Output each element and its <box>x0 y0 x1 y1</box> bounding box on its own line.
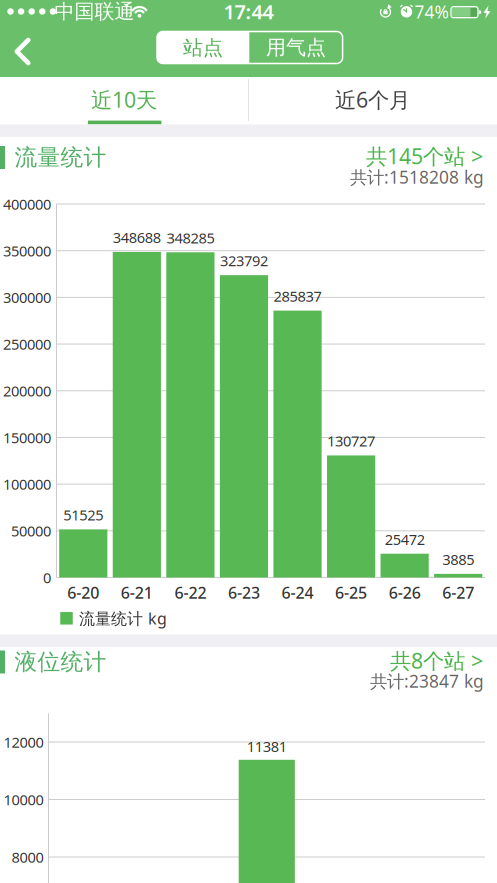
staticText: 用气点 <box>266 35 326 60</box>
staticText: 25472 <box>385 529 425 549</box>
staticText: 250000 <box>3 334 51 354</box>
staticText: 站点 <box>183 35 223 60</box>
staticText: 74% <box>414 0 448 23</box>
staticText: 中国联通 <box>54 0 134 24</box>
button[interactable]: 共8个站 > <box>283 646 483 675</box>
staticText: 流量统计 kg <box>79 608 167 629</box>
button[interactable]: 用气点 <box>249 31 342 63</box>
staticText: 6-20 <box>67 582 99 603</box>
staticText: 近10天 <box>91 85 157 114</box>
button[interactable]: 共145个站 > <box>283 142 483 170</box>
staticText: 50000 <box>11 521 51 541</box>
staticText: 共145个站 > <box>366 142 483 170</box>
staticText: 17:44 <box>223 0 273 25</box>
staticText: 共8个站 > <box>390 646 483 675</box>
staticText: 11381 <box>247 737 287 756</box>
staticText: 3885 <box>442 550 474 569</box>
staticText: 6-23 <box>228 582 260 603</box>
staticText: 12000 <box>3 732 43 752</box>
button[interactable]: Back <box>0 29 44 73</box>
staticText: 6-24 <box>281 582 313 603</box>
staticText: 350000 <box>3 241 51 260</box>
staticText: 0 <box>43 568 51 587</box>
staticText: 51525 <box>63 505 103 525</box>
staticText: 150000 <box>3 428 51 447</box>
staticText: 6-27 <box>442 582 474 603</box>
staticText: 8000 <box>11 847 43 867</box>
staticText: 323792 <box>220 251 268 270</box>
staticText: 400000 <box>3 194 51 214</box>
button[interactable]: 站点 <box>0 0 497 883</box>
staticText: 流量统计 <box>14 144 106 171</box>
staticText: 348688 <box>113 228 161 247</box>
staticText: 300000 <box>3 288 51 307</box>
staticText: 近6个月 <box>335 85 410 114</box>
staticText: 200000 <box>3 381 51 400</box>
button[interactable]: 近10天 <box>0 77 248 121</box>
staticText: 100000 <box>3 474 51 494</box>
staticText: 液位统计 <box>14 648 106 676</box>
staticText: 130727 <box>327 431 375 451</box>
staticText: 6-21 <box>121 582 153 603</box>
staticText: 6-25 <box>335 582 367 603</box>
staticText: 6-26 <box>389 582 421 603</box>
staticText: 6-22 <box>174 582 206 603</box>
staticText: 共计:1518208 kg <box>350 165 484 188</box>
staticText: 285837 <box>273 286 321 306</box>
staticText: 10000 <box>3 790 43 809</box>
button[interactable]: 近6个月 <box>248 77 496 121</box>
staticText: 348285 <box>166 228 214 248</box>
staticText: 共计:23847 kg <box>370 669 484 692</box>
